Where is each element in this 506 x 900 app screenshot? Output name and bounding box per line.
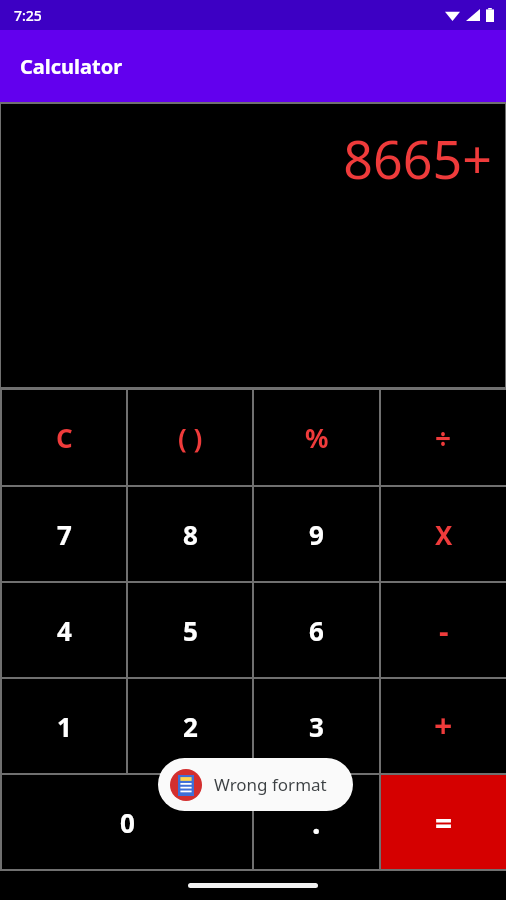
staticText: ÷ xyxy=(435,419,452,457)
button[interactable]: 5 xyxy=(128,583,252,677)
staticText: 0 xyxy=(120,805,135,840)
button[interactable]: 4 xyxy=(2,583,126,677)
button[interactable]: % xyxy=(254,390,379,485)
staticText: 3 xyxy=(309,709,324,744)
button[interactable]: C xyxy=(2,390,126,485)
button[interactable]: = xyxy=(381,775,506,869)
staticText: - xyxy=(439,610,449,651)
button[interactable]: ( ) xyxy=(128,390,252,485)
staticText: 9 xyxy=(309,517,324,552)
staticText: X xyxy=(435,517,453,552)
staticText: Wrong format xyxy=(214,773,327,796)
staticText: 1 xyxy=(57,709,72,744)
staticText: 2 xyxy=(183,709,198,744)
staticText: . xyxy=(312,802,321,843)
staticText: ( ) xyxy=(178,420,203,455)
button[interactable]: . xyxy=(254,775,379,869)
staticText: 6 xyxy=(309,613,324,648)
button[interactable]: 0 xyxy=(2,775,252,869)
staticText: 7:25 xyxy=(14,6,42,25)
staticText: 8665+ xyxy=(343,123,492,194)
staticText: Calculator xyxy=(20,53,123,80)
staticText: 4 xyxy=(57,613,72,648)
staticText: = xyxy=(435,802,453,843)
button[interactable]: + xyxy=(381,679,506,773)
button[interactable]: 8 xyxy=(128,487,252,581)
button[interactable]: 3 xyxy=(254,679,379,773)
button[interactable]: 9 xyxy=(254,487,379,581)
staticText: + xyxy=(434,704,453,748)
button[interactable]: 1 xyxy=(2,679,126,773)
button[interactable]: ÷ xyxy=(381,390,506,485)
button[interactable]: - xyxy=(381,583,506,677)
button[interactable]: 2 xyxy=(128,679,252,773)
staticText: 8 xyxy=(183,517,198,552)
staticText: 7 xyxy=(57,517,72,552)
button[interactable]: 7 xyxy=(2,487,126,581)
staticText: C xyxy=(56,420,73,455)
staticText: 5 xyxy=(183,613,198,648)
staticText: % xyxy=(305,420,329,455)
button[interactable]: X xyxy=(381,487,506,581)
button[interactable]: 6 xyxy=(254,583,379,677)
